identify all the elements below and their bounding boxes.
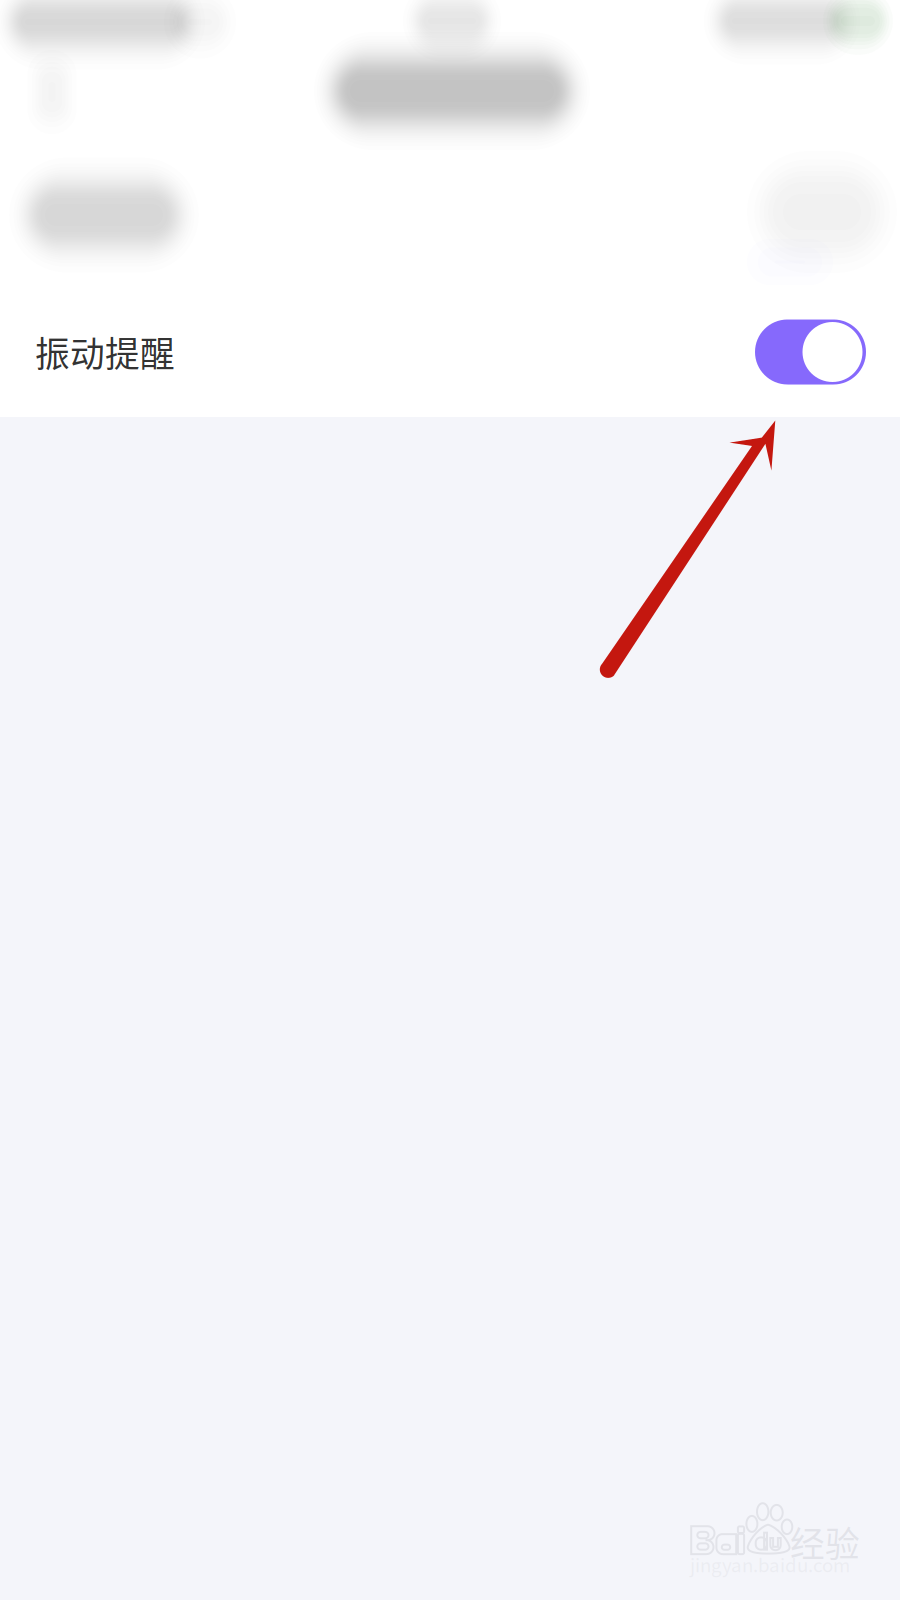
staticText: jingyan.baidu.com [690,1550,850,1577]
staticText: 经验 [790,1517,860,1567]
button[interactable]: Back [0,37,107,147]
staticText: 振动提醒 [35,327,175,377]
button[interactable]: 振动提醒 [0,290,900,414]
button[interactable] [0,135,254,295]
